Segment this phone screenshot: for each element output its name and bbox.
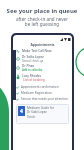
staticText: Details <box>27 115 36 119</box>
staticText: Appointment confirmation <box>21 85 59 89</box>
staticText: Appointments <box>13 42 72 47</box>
staticText: Medicare Registration <box>21 91 52 95</box>
button[interactable]: Appointment confirmation <box>13 84 72 90</box>
button[interactable]: Service that needs your attention <box>13 96 72 102</box>
staticText: Dr Phan <box>22 64 35 68</box>
button[interactable]: Medicare Registration <box>13 90 72 96</box>
staticText: Cancel booking <box>23 78 72 82</box>
staticText: Add to calendar <box>22 68 43 72</box>
button[interactable]: Dr Phan <box>13 64 72 72</box>
staticText: Service that needs your attention <box>21 97 68 101</box>
staticText: Dr Sofia Lopez <box>22 55 44 59</box>
button[interactable]: Dr Sofia Lopez <box>13 55 72 63</box>
staticText: 4 <box>20 108 23 115</box>
button[interactable]: Lucy Rhodes <box>13 74 72 78</box>
staticText: Medicare Guide for Dr Gabi Lopez <box>27 106 55 114</box>
button[interactable]: 4 <box>16 104 69 124</box>
button[interactable]: Make Test Call Now <box>13 49 72 53</box>
staticText: See your place in queue <box>0 7 84 15</box>
staticText: Lucy Rhodes <box>22 74 42 78</box>
staticText: Make Test Call Now <box>22 49 52 53</box>
staticText: Dental check-up <box>22 59 44 63</box>
staticText: after check-in and never be left guessin… <box>0 16 84 27</box>
